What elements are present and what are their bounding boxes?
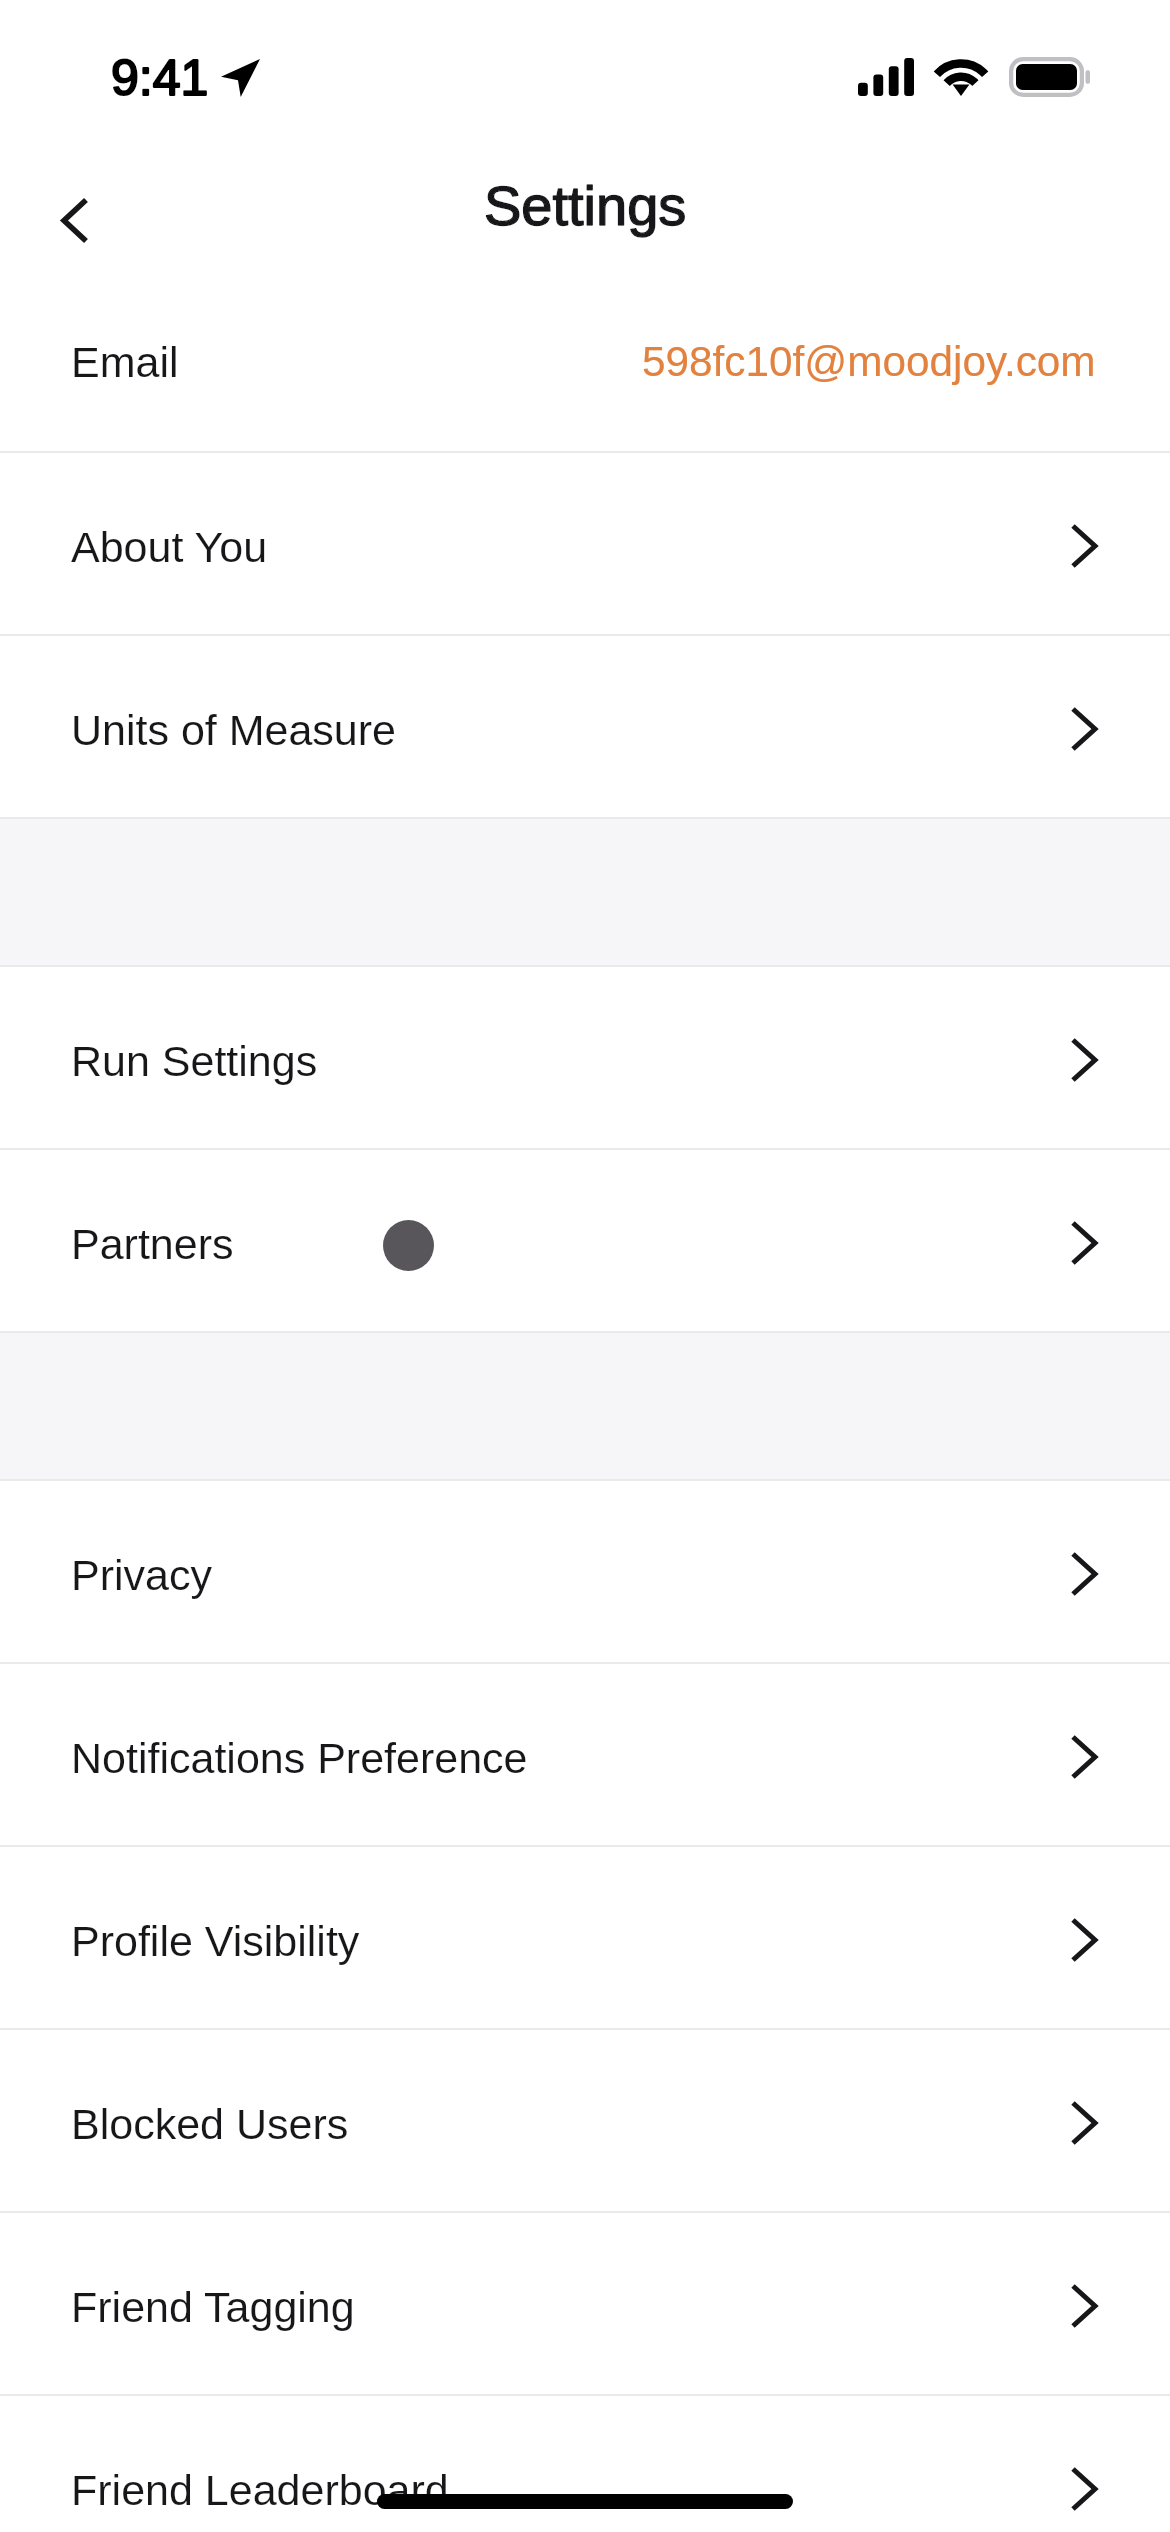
staticText: Partners	[71, 1220, 234, 1268]
button[interactable]: Profile Visibility	[0, 1847, 1170, 2028]
staticText: Blocked Users	[71, 2100, 349, 2148]
staticText: Notifications Preference	[71, 1734, 528, 1782]
staticText: Settings	[484, 174, 687, 237]
staticText: Profile Visibility	[71, 1917, 360, 1965]
button[interactable]: Email	[0, 274, 1170, 451]
button[interactable]: Partners	[0, 1150, 1170, 1331]
staticText: 598fc10f@moodjoy.com	[642, 338, 1096, 385]
button[interactable]: Back	[15, 160, 135, 280]
button[interactable]: Blocked Users	[0, 2030, 1170, 2211]
staticText: Privacy	[71, 1551, 212, 1599]
staticText: About You	[71, 523, 268, 571]
staticText: 9:41	[111, 50, 209, 106]
button[interactable]: Run Settings	[0, 967, 1170, 1148]
staticText: 9:41	[111, 50, 209, 106]
staticText: Run Settings	[71, 1037, 318, 1085]
staticText: Email	[71, 338, 179, 386]
staticText: Friend Leaderboard	[71, 2466, 449, 2514]
staticText: Settings	[484, 174, 687, 237]
button[interactable]: Friend Leaderboard	[0, 2396, 1170, 2532]
button[interactable]: Privacy	[0, 1481, 1170, 1662]
button[interactable]: Notifications Preference	[0, 1664, 1170, 1845]
button[interactable]: Units of Measure	[0, 636, 1170, 817]
button[interactable]: Friend Tagging	[0, 2213, 1170, 2394]
staticText: Units of Measure	[71, 706, 397, 754]
staticText: Friend Tagging	[71, 2283, 355, 2331]
button[interactable]: About You	[0, 453, 1170, 634]
